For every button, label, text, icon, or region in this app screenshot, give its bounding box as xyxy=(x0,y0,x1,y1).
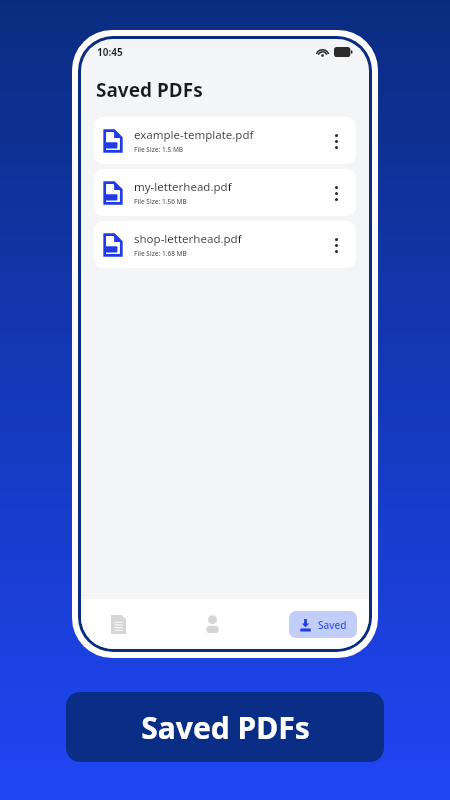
staticText: example-template.pdf xyxy=(134,127,254,143)
button[interactable]: my-letterhead.pdf xyxy=(94,169,356,216)
staticText: Saved PDFs xyxy=(96,77,203,103)
staticText: 10:45 xyxy=(97,45,123,59)
button[interactable]: shop-letterhead.pdf xyxy=(94,221,356,268)
button[interactable]: Documents xyxy=(101,607,135,641)
staticText: Saved xyxy=(318,618,347,632)
button[interactable]: Saved xyxy=(289,611,357,638)
staticText: File Size: 1.5 MB xyxy=(134,145,184,154)
staticText: File Size: 1.68 MB xyxy=(134,249,187,258)
staticText: my-letterhead.pdf xyxy=(134,179,232,195)
button[interactable]: More options xyxy=(325,228,347,262)
staticText: shop-letterhead.pdf xyxy=(134,231,242,247)
button[interactable]: Saved PDFs xyxy=(66,692,384,762)
staticText: File Size: 1.56 MB xyxy=(134,197,187,206)
button[interactable]: Profile xyxy=(195,607,229,641)
staticText: Saved PDFs xyxy=(141,707,310,748)
button[interactable]: More options xyxy=(325,124,347,158)
button[interactable]: example-template.pdf xyxy=(94,117,356,164)
button[interactable]: More options xyxy=(325,176,347,210)
